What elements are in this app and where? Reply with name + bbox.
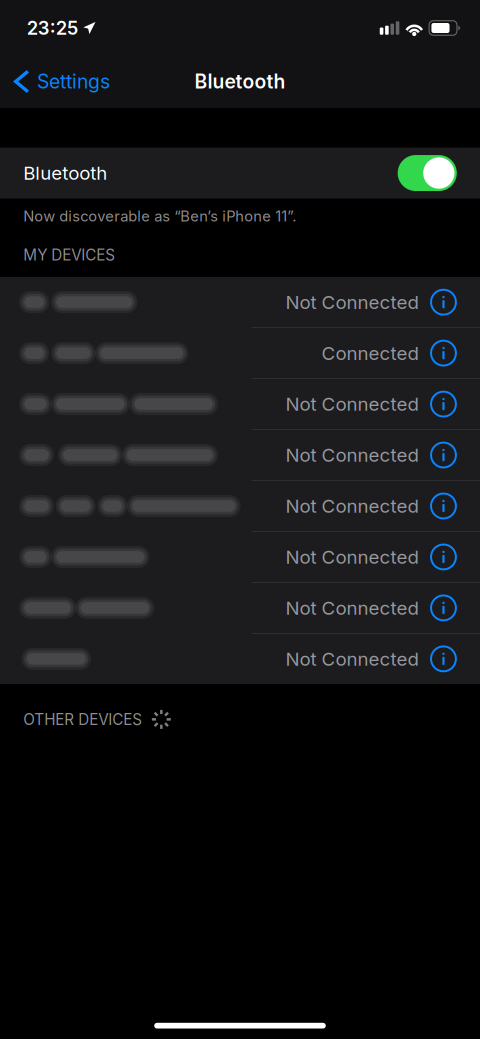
button[interactable]: Bluetooth <box>398 155 457 191</box>
staticText: Not Connected <box>286 597 419 619</box>
button[interactable]: Device — Not Connected <box>0 481 480 531</box>
staticText: OTHER DEVICES <box>23 710 142 729</box>
staticText: Not Connected <box>286 444 419 466</box>
button[interactable]: Device — Not Connected <box>0 277 480 327</box>
staticText: Not Connected <box>286 546 419 568</box>
button[interactable]: Device — Not Connected <box>0 634 480 684</box>
staticText: 23:25 <box>27 17 79 39</box>
button[interactable]: Device — Not Connected <box>0 430 480 480</box>
staticText: MY DEVICES <box>23 246 115 264</box>
staticText: Now discoverable as “Ben’s iPhone 11”. <box>23 207 296 225</box>
button[interactable]: Settings <box>0 61 119 101</box>
staticText: Bluetooth <box>194 70 285 93</box>
staticText: Bluetooth <box>23 162 107 184</box>
staticText: Not Connected <box>286 648 419 670</box>
staticText: Not Connected <box>286 291 419 313</box>
staticText: Settings <box>37 70 110 93</box>
button[interactable]: Device — Connected <box>0 328 480 378</box>
button[interactable]: Device — Not Connected <box>0 379 480 429</box>
staticText: Not Connected <box>286 495 419 517</box>
staticText: Not Connected <box>286 393 419 415</box>
button[interactable]: Device — Not Connected <box>0 583 480 633</box>
staticText: Connected <box>322 342 419 364</box>
button[interactable]: Device — Not Connected <box>0 532 480 582</box>
